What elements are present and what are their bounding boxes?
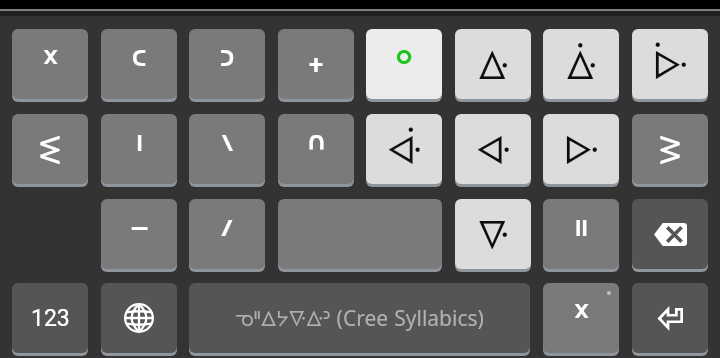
- button[interactable]: ᐟ: [189, 199, 265, 271]
- staticText: ᕒ: [658, 123, 682, 175]
- button[interactable]: ᕒ: [632, 114, 708, 186]
- staticText: ᐤ: [395, 36, 413, 93]
- button[interactable]: ᐠ: [189, 114, 265, 186]
- button[interactable]: ᓀᐦᐃᔭᐍᐏᐣ (Cree Syllabics): [189, 283, 530, 355]
- button[interactable]: ᐑ: [543, 29, 619, 101]
- button[interactable]: ᓬ: [12, 114, 88, 186]
- button[interactable]: Backspace: [632, 199, 708, 271]
- button[interactable]: ᐘ: [455, 114, 531, 186]
- button[interactable]: ᐣ: [189, 29, 265, 101]
- staticText: ᐢ: [308, 121, 325, 178]
- staticText: 123: [31, 305, 70, 332]
- button[interactable]: ᒼ: [101, 29, 177, 101]
- staticText: ᐑ: [565, 38, 597, 90]
- staticText: ᐓ: [564, 123, 598, 175]
- button[interactable]: Enter: [632, 283, 708, 355]
- staticText: ᐦ: [575, 206, 588, 263]
- staticText: ᕀ: [308, 36, 324, 93]
- staticText: ᐟ: [220, 206, 234, 263]
- button[interactable]: ᐏ: [455, 29, 531, 101]
- staticText: ᐣ: [219, 36, 235, 93]
- button[interactable]: ᐚ: [366, 114, 442, 186]
- staticText: ᐏ: [477, 38, 509, 90]
- button[interactable]: ᑊ: [101, 114, 177, 186]
- button[interactable]: ᕽ: [12, 29, 88, 101]
- button[interactable]: ᕽ: [543, 283, 619, 355]
- button[interactable]: Blank key: [278, 199, 442, 271]
- staticText: ᐚ: [387, 123, 421, 175]
- button[interactable]: ᐍ: [455, 199, 531, 271]
- staticText: ᒼ: [131, 36, 147, 93]
- button[interactable]: 123: [12, 283, 88, 355]
- staticText: ᓬ: [38, 123, 62, 175]
- button[interactable]: ᐦ: [543, 199, 619, 271]
- staticText: ᐠ: [221, 121, 234, 178]
- staticText: ᑊ: [135, 121, 144, 178]
- button[interactable]: ᕀ: [278, 29, 354, 101]
- staticText: ᐘ: [476, 123, 510, 175]
- staticText: ᐕ: [653, 38, 687, 90]
- staticText: ᕽ: [42, 36, 59, 93]
- button[interactable]: ᐓ: [543, 114, 619, 186]
- button[interactable]: Switch input language: [101, 283, 177, 355]
- staticText: ᐍ: [477, 208, 509, 260]
- staticText: ᓀᐦᐃᔭᐍᐏᐣ (Cree Syllabics): [235, 304, 484, 333]
- staticText: ᐨ: [130, 206, 149, 263]
- button[interactable]: ᐨ: [101, 199, 177, 271]
- button[interactable]: ᐤ: [366, 29, 442, 101]
- button[interactable]: ᐕ: [632, 29, 708, 101]
- button[interactable]: ᐢ: [278, 114, 354, 186]
- staticText: ᕽ: [573, 290, 590, 347]
